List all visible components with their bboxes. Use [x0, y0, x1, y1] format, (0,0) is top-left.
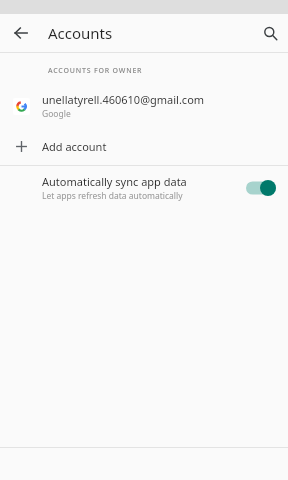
- button[interactable]: unellatyrell.460610@gmail.com: [0, 85, 288, 127]
- staticText: Let apps refresh data automatically: [42, 190, 183, 202]
- button[interactable]: Automatically sync app data: [0, 166, 288, 210]
- button[interactable]: Add account: [0, 127, 288, 165]
- staticText: unellatyrell.460610@gmail.com: [42, 92, 205, 107]
- staticText: Add account: [42, 139, 107, 154]
- button[interactable]: Search: [256, 19, 284, 47]
- staticText: Accounts: [48, 23, 113, 43]
- button[interactable]: Back: [7, 19, 35, 47]
- staticText: Google: [42, 108, 71, 120]
- button[interactable]: Automatically sync app data toggle: [244, 176, 278, 200]
- staticText: Automatically sync app data: [42, 174, 187, 189]
- staticText: ACCOUNTS FOR OWNER: [48, 66, 143, 76]
